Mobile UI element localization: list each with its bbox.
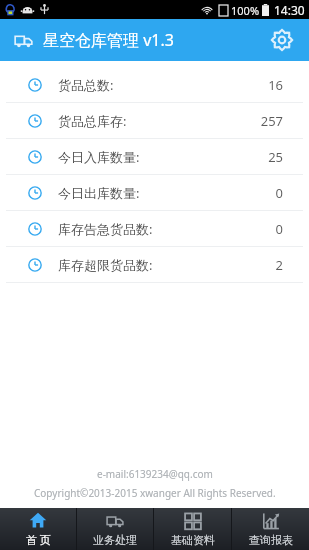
button[interactable]: 首 页: [0, 508, 76, 550]
button[interactable]: 今日入库数量:: [0, 139, 309, 174]
staticText: 星空仓库管理 v1.3: [43, 29, 174, 51]
staticText: Copyright©2013-2015 xwanger All Rights R…: [34, 486, 276, 500]
button[interactable]: 货品总数:: [0, 67, 309, 102]
button[interactable]: 基础资料: [154, 508, 231, 550]
staticText: 首 页: [26, 532, 51, 547]
button[interactable]: 业务处理: [77, 508, 153, 550]
staticText: 0: [275, 184, 283, 202]
staticText: 业务处理: [93, 533, 137, 547]
staticText: 货品总数:: [58, 76, 268, 94]
staticText: 257: [260, 112, 283, 130]
button[interactable]: 查询报表: [232, 508, 309, 550]
staticText: 14:30: [274, 2, 305, 18]
button[interactable]: Settings: [265, 23, 299, 57]
button[interactable]: 库存告急货品数:: [0, 211, 309, 246]
button[interactable]: 货品总库存:: [0, 103, 309, 138]
staticText: e-mail:6139234@qq.com: [97, 467, 213, 481]
button[interactable]: 库存超限货品数:: [0, 247, 309, 282]
staticText: 货品总库存:: [58, 112, 260, 130]
staticText: 25: [268, 148, 283, 166]
staticText: 100%: [231, 3, 260, 18]
staticText: 16: [268, 76, 283, 94]
button[interactable]: 今日出库数量:: [0, 175, 309, 210]
staticText: 基础资料: [171, 533, 215, 547]
staticText: 查询报表: [249, 533, 293, 547]
staticText: 0: [275, 220, 283, 238]
staticText: 库存告急货品数:: [58, 220, 275, 238]
staticText: 今日出库数量:: [58, 184, 275, 202]
staticText: 库存超限货品数:: [58, 256, 275, 274]
staticText: 2: [275, 256, 283, 274]
staticText: 今日入库数量:: [58, 148, 268, 166]
